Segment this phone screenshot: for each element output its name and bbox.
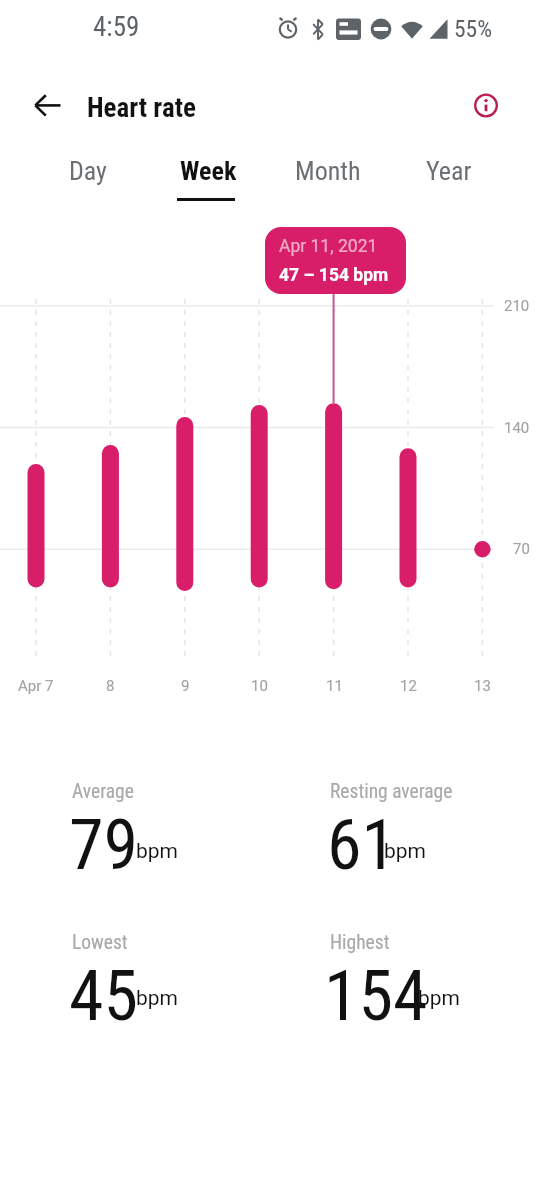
button[interactable]: [148, 330, 222, 630]
staticText: 210: [504, 297, 530, 315]
staticText: 140: [504, 419, 530, 437]
staticText: 79: [69, 804, 139, 886]
button[interactable]: [371, 330, 445, 630]
staticText: Lowest: [72, 931, 128, 954]
staticText: 61: [327, 804, 397, 886]
staticText: 47 – 154 bpm: [279, 265, 389, 286]
button[interactable]: [73, 330, 147, 630]
button[interactable]: [0, 330, 73, 630]
staticText: 10: [251, 677, 268, 695]
staticText: Month: [295, 156, 361, 186]
staticText: Highest: [330, 931, 390, 954]
staticText: Average: [72, 780, 134, 803]
staticText: bpm: [136, 986, 178, 1011]
staticText: 12: [400, 677, 417, 695]
staticText: Year: [426, 156, 472, 186]
staticText: 11: [326, 677, 343, 695]
staticText: bpm: [418, 986, 460, 1011]
button[interactable]: Week: [148, 148, 268, 194]
staticText: Apr 11, 2021: [279, 236, 378, 257]
staticText: 9: [181, 677, 190, 695]
button[interactable]: [22, 83, 68, 128]
staticText: Resting average: [330, 780, 453, 803]
staticText: 45: [69, 955, 139, 1037]
staticText: 13: [474, 677, 491, 695]
button[interactable]: [297, 330, 371, 630]
staticText: 154: [324, 955, 428, 1037]
button[interactable]: [222, 330, 296, 630]
button[interactable]: [445, 330, 519, 630]
staticText: bpm: [384, 839, 426, 864]
staticText: 55%: [454, 15, 493, 43]
staticText: 4:59: [93, 11, 140, 43]
staticText: Day: [69, 156, 107, 186]
staticText: Week: [180, 156, 237, 186]
button[interactable]: Day: [28, 148, 148, 194]
staticText: Apr 7: [18, 677, 54, 695]
staticText: 8: [106, 677, 115, 695]
button[interactable]: Month: [268, 148, 388, 194]
staticText: 70: [513, 540, 530, 558]
button[interactable]: Year: [389, 148, 509, 194]
staticText: Heart rate: [87, 92, 196, 122]
button[interactable]: [462, 82, 510, 129]
staticText: bpm: [136, 839, 178, 864]
